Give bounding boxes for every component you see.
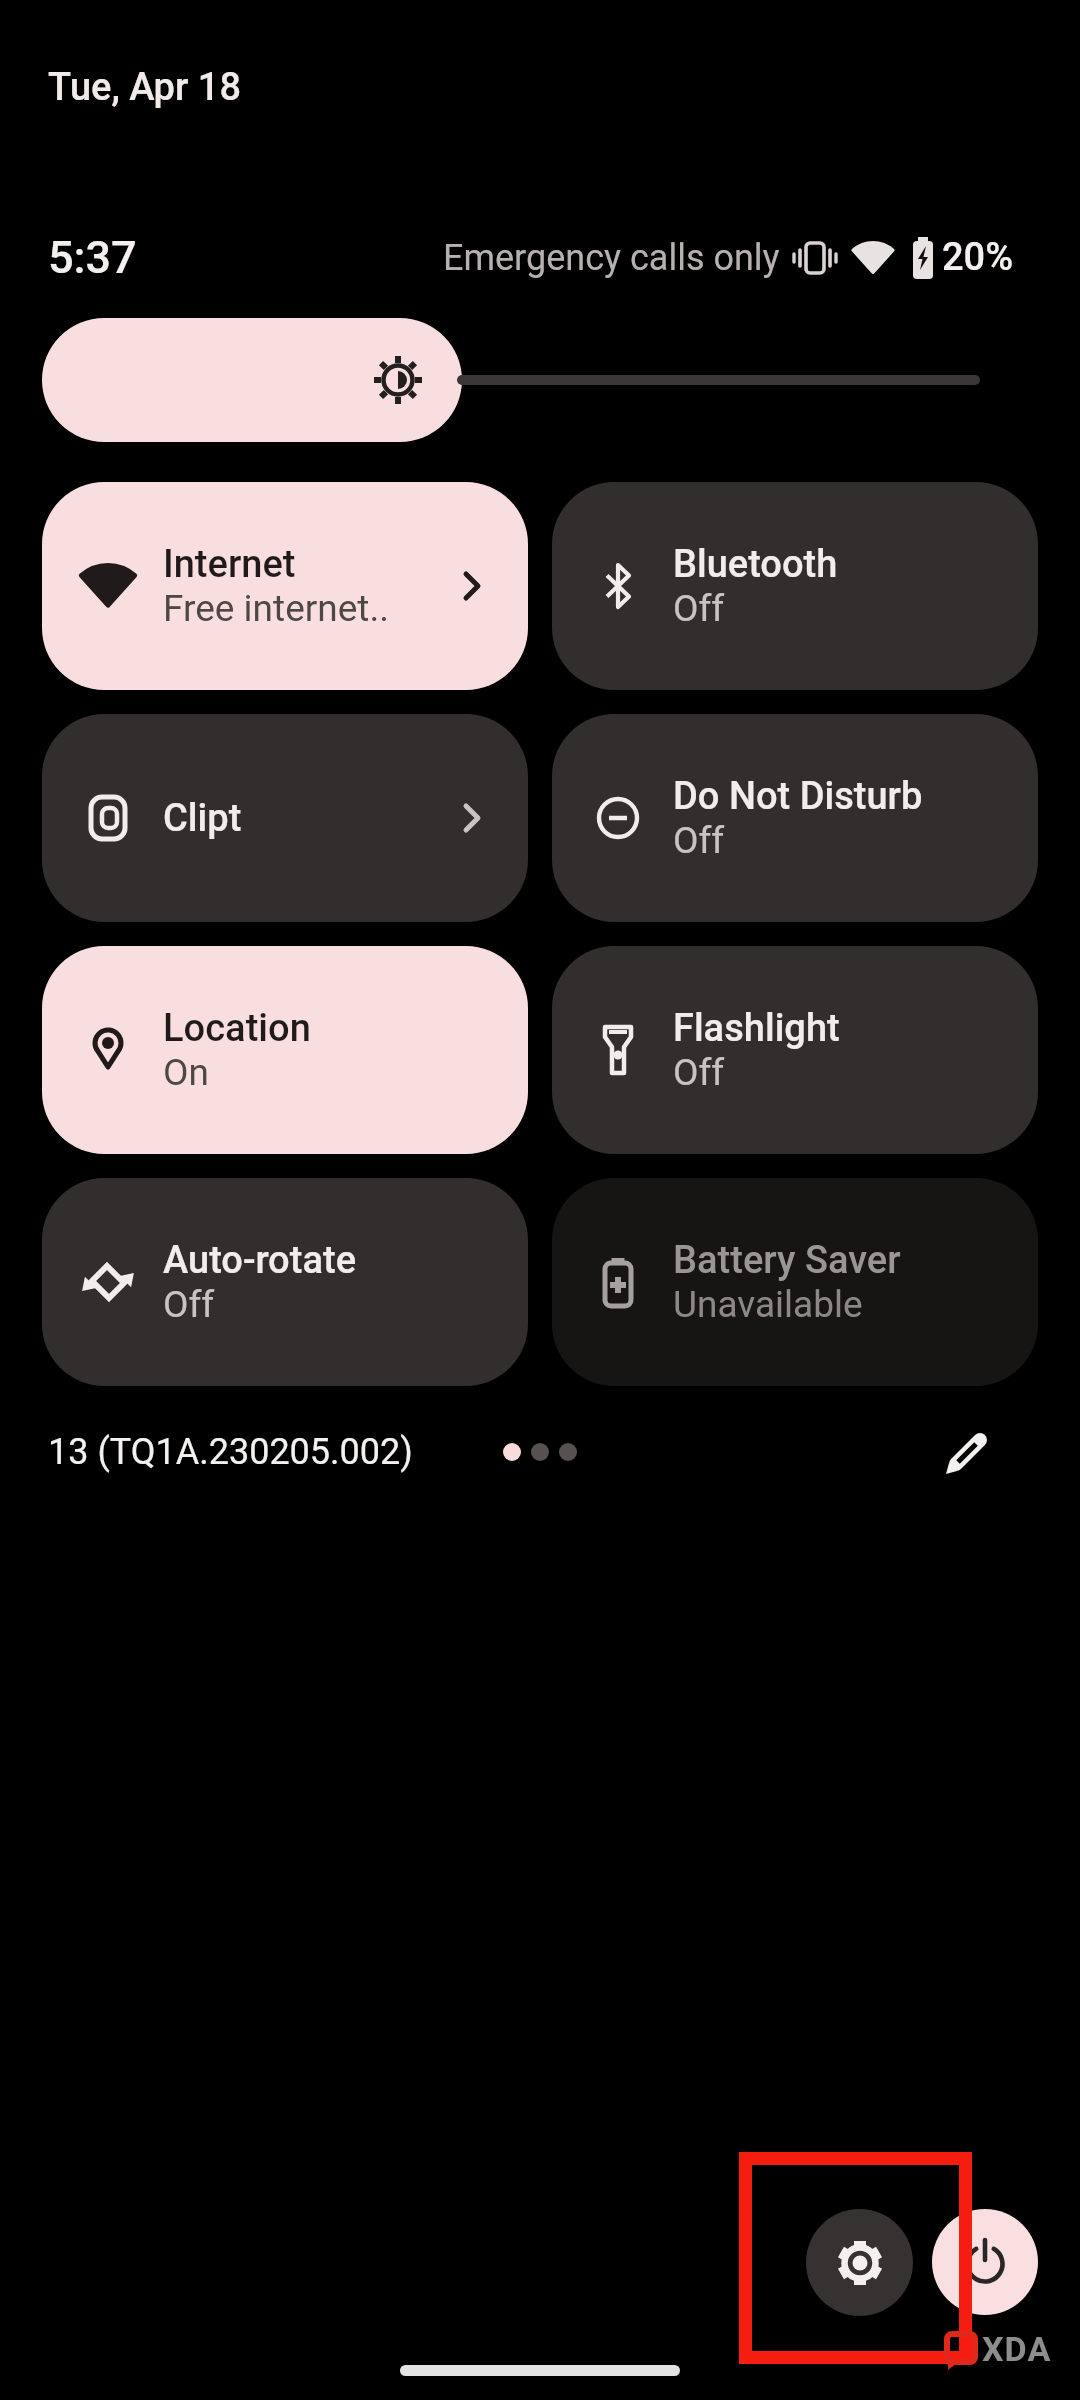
staticText: Internet (163, 542, 296, 587)
button[interactable]: Battery Saver (552, 1178, 1038, 1386)
staticText: Off (673, 587, 725, 630)
staticText: Off (673, 819, 725, 862)
button[interactable]: Bluetooth (552, 482, 1038, 690)
staticText: Do Not Disturb (673, 774, 923, 819)
staticText: 5:37 (48, 231, 137, 284)
button[interactable] (932, 2209, 1038, 2315)
staticText: 20% (942, 235, 1014, 280)
button[interactable] (932, 1416, 1004, 1488)
staticText: On (163, 1051, 209, 1094)
staticText: Flashlight (673, 1006, 840, 1051)
staticText: Location (163, 1006, 311, 1051)
button[interactable]: Location (42, 946, 528, 1154)
staticText: 13 (TQ1A.230205.002) (48, 1431, 413, 1473)
button[interactable] (42, 318, 462, 442)
staticText: Auto-rotate (163, 1238, 357, 1283)
staticText: Off (673, 1051, 725, 1094)
button[interactable]: Do Not Disturb (552, 714, 1038, 922)
staticText: Free internet.. (163, 587, 389, 630)
button[interactable]: Flashlight (552, 946, 1038, 1154)
staticText: Bluetooth (673, 542, 838, 587)
staticText: Clipt (163, 796, 242, 841)
button[interactable]: Internet (42, 482, 528, 690)
staticText: Tue, Apr 18 (48, 65, 242, 110)
staticText: Unavailable (673, 1283, 863, 1326)
staticText: Off (163, 1283, 215, 1326)
button[interactable]: Auto-rotate (42, 1178, 528, 1386)
staticText: Battery Saver (673, 1238, 901, 1283)
button[interactable]: Clipt (42, 714, 528, 922)
button[interactable] (806, 2209, 913, 2316)
staticText: XDA (982, 2329, 1052, 2369)
staticText: Emergency calls only (443, 237, 780, 279)
